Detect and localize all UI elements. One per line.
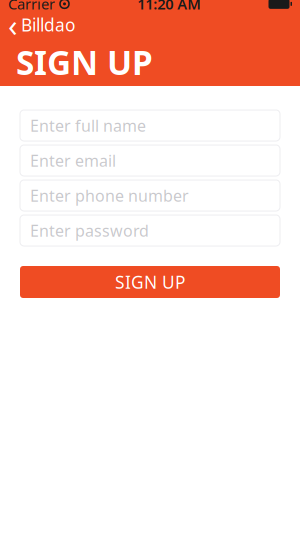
staticText: ‹ (8, 4, 18, 45)
staticText: 11:20 AM (137, 0, 201, 14)
staticText: Enter email (30, 150, 116, 171)
staticText: Carrier (8, 0, 55, 14)
button[interactable]: SIGN UP (20, 266, 280, 298)
staticText: Billdao (21, 13, 75, 36)
staticText: SIGN UP (16, 40, 153, 84)
staticText: SIGN UP (115, 270, 185, 293)
button[interactable]: ‹ (0, 14, 300, 36)
staticText: Enter full name (30, 115, 146, 136)
staticText: Enter phone number (30, 185, 189, 206)
staticText: Enter password (30, 220, 149, 241)
